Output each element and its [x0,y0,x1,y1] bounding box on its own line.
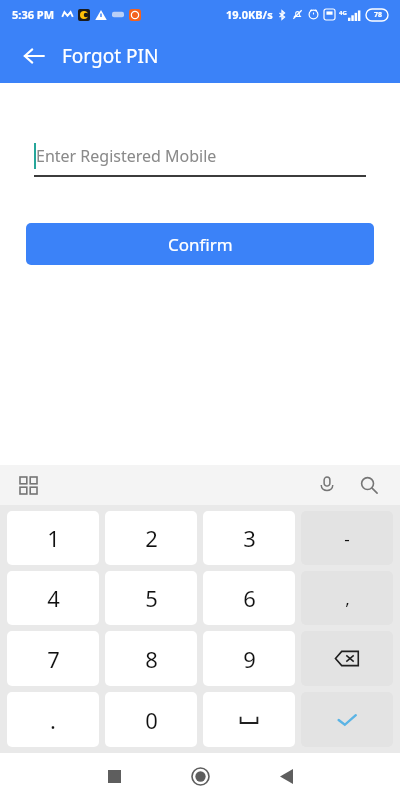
staticText: , [345,587,350,610]
button[interactable]: Enter Registered Mobile [34,135,366,177]
button[interactable]: Recents [86,753,142,800]
button[interactable]: Space [203,692,295,747]
button[interactable]: 3 [203,511,295,565]
staticText: 3 [243,523,256,553]
button[interactable]: Confirm [26,223,374,265]
button[interactable]: Enter [301,692,393,747]
button[interactable]: 2 [105,511,197,565]
staticText: 2 [145,523,158,553]
button[interactable]: Voice input [310,468,344,502]
button[interactable]: - [301,511,393,565]
staticText: 78 [374,10,383,20]
button[interactable]: . [7,692,99,747]
button[interactable]: Back [12,34,56,78]
staticText: Confirm [168,233,233,256]
staticText: - [344,527,350,550]
staticText: 8 [145,644,158,674]
staticText: 1 [47,523,60,553]
button[interactable]: 0 [105,692,197,747]
button[interactable]: Search [352,468,386,502]
button[interactable]: 7 [7,631,99,686]
button[interactable]: , [301,571,393,625]
staticText: 5 [145,583,158,613]
button[interactable]: 9 [203,631,295,686]
button[interactable]: Home [172,753,228,800]
staticText: 6 [243,583,256,613]
button[interactable]: 5 [105,571,197,625]
staticText: Forgot PIN [62,43,159,69]
button[interactable]: Keyboard layouts [12,469,44,501]
staticText: 0 [145,705,158,735]
staticText: 7 [47,644,60,674]
staticText: 19.0KB/s [226,7,273,22]
button[interactable]: Backspace [301,631,393,686]
staticText: 4G [339,9,347,17]
button[interactable]: 4 [7,571,99,625]
staticText: Enter Registered Mobile [36,145,217,167]
button[interactable]: Back [258,753,314,800]
button[interactable]: 8 [105,631,197,686]
button[interactable]: 1 [7,511,99,565]
staticText: 4 [47,583,60,613]
button[interactable]: 6 [203,571,295,625]
staticText: 5:36 PM [12,7,55,22]
staticText: 9 [243,644,256,674]
staticText: . [50,705,56,735]
